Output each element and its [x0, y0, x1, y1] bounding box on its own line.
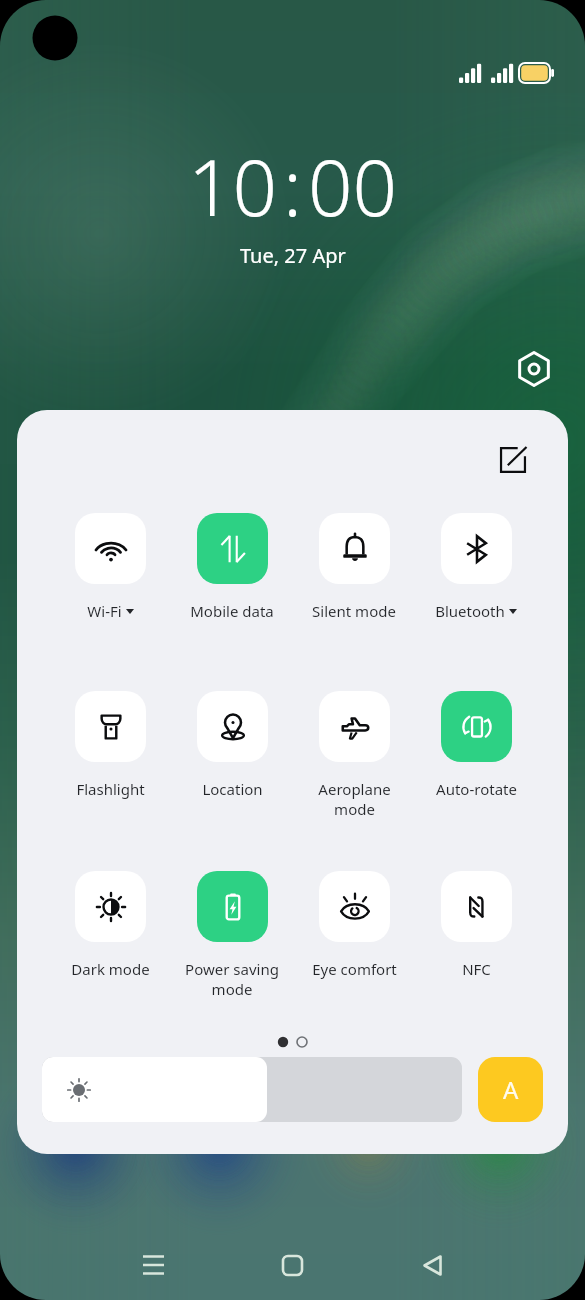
staticText: Auto-rotate — [436, 779, 517, 799]
button[interactable]: Silent mode — [293, 513, 415, 621]
button[interactable]: Back — [404, 1237, 460, 1293]
button[interactable]: Settings — [512, 347, 556, 391]
staticText: Eye comfort — [312, 959, 397, 979]
staticText: Dark mode — [71, 959, 150, 979]
button[interactable]: NFC — [415, 871, 537, 979]
button[interactable]: A — [478, 1057, 543, 1122]
button[interactable]: Wi-Fi — [49, 513, 171, 621]
button[interactable]: Bluetooth — [415, 513, 537, 621]
button[interactable]: Location — [171, 691, 293, 799]
button[interactable]: Home — [264, 1237, 320, 1293]
button[interactable]: Recents — [125, 1237, 181, 1293]
button[interactable]: Auto-rotate — [415, 691, 537, 799]
staticText: NFC — [462, 959, 491, 979]
staticText: : — [283, 133, 303, 239]
staticText: Mobile data — [190, 601, 274, 621]
staticText: Silent mode — [312, 601, 396, 621]
button[interactable]: Aeroplane mode — [293, 691, 415, 819]
button[interactable]: Mobile data — [171, 513, 293, 621]
staticText: A — [503, 1073, 519, 1106]
button[interactable]: Power saving mode — [171, 871, 293, 999]
staticText: Bluetooth — [435, 601, 505, 621]
staticText: Flashlight — [76, 779, 145, 799]
staticText: Power saving mode — [185, 959, 279, 999]
staticText: Wi-Fi — [87, 601, 122, 621]
staticText: 10 — [188, 133, 278, 239]
button[interactable]: Brightness — [42, 1057, 462, 1122]
staticText: Tue, 27 Apr — [240, 242, 346, 269]
button[interactable]: Eye comfort — [293, 871, 415, 979]
staticText: Aeroplane mode — [318, 779, 391, 819]
button[interactable]: Flashlight — [49, 691, 171, 799]
button[interactable]: Dark mode — [49, 871, 171, 979]
button[interactable]: Edit quick settings — [492, 439, 533, 480]
staticText: Location — [202, 779, 263, 799]
staticText: 00 — [308, 133, 398, 239]
